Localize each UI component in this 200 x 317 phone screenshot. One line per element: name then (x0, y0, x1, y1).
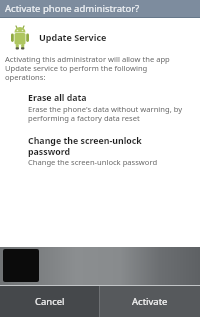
staticText: Activate (132, 295, 168, 308)
staticText: Change the screen-unlock password (28, 157, 158, 167)
staticText: Erase all data (28, 92, 87, 104)
staticText: Erase the phone's data without warning, … (28, 104, 183, 123)
staticText: Cancel (35, 295, 65, 308)
button[interactable]: Activate (100, 286, 200, 317)
button[interactable]: Cancel (0, 286, 99, 317)
staticText: Activating this administrator will allow… (5, 54, 170, 82)
staticText: Activate phone administrator? (5, 2, 140, 15)
staticText: Change the screen-unlock password (28, 135, 142, 157)
staticText: Update Service (39, 31, 107, 43)
